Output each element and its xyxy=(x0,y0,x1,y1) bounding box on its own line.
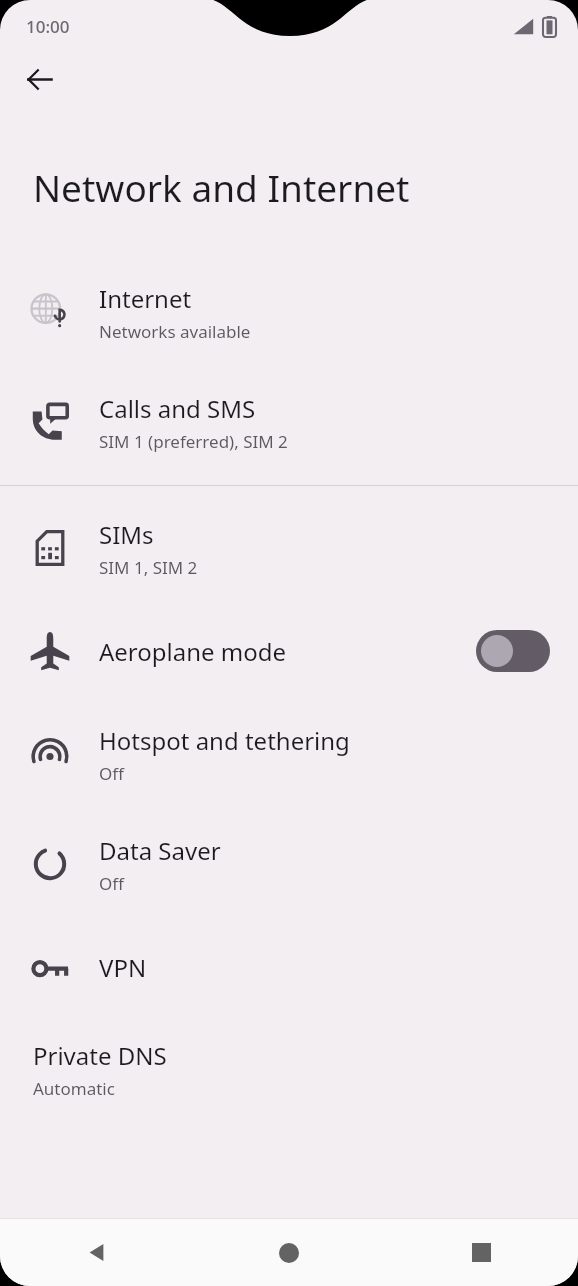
staticText: Network and Internet xyxy=(33,162,410,212)
staticText: 10:00 xyxy=(26,15,70,38)
staticText: VPN xyxy=(99,951,147,984)
button[interactable]: Back xyxy=(12,52,66,106)
staticText: SIM 1, SIM 2 xyxy=(99,556,198,579)
staticText: Calls and SMS xyxy=(99,392,256,425)
button[interactable]: Back xyxy=(0,1219,192,1286)
staticText: Aeroplane mode xyxy=(99,635,287,668)
staticText: Data Saver xyxy=(99,834,221,867)
staticText: Off xyxy=(99,872,124,895)
staticText: Off xyxy=(99,762,124,785)
staticText: Hotspot and tethering xyxy=(99,724,350,757)
staticText: Networks available xyxy=(99,320,251,343)
button[interactable]: Aeroplane mode xyxy=(476,630,550,672)
staticText: SIMs xyxy=(99,518,154,551)
staticText: SIM 1 (preferred), SIM 2 xyxy=(99,430,288,453)
staticText: Internet xyxy=(99,282,192,315)
button[interactable]: Private DNS xyxy=(0,1035,578,1104)
button[interactable]: Calls and SMS xyxy=(0,367,578,477)
button[interactable]: Recent apps xyxy=(385,1219,578,1286)
button[interactable]: Home xyxy=(192,1219,385,1286)
staticText: Private DNS xyxy=(33,1039,167,1072)
button[interactable]: Data Saver xyxy=(0,809,578,919)
button[interactable]: Internet xyxy=(0,257,578,367)
button[interactable]: SIMs xyxy=(0,493,578,603)
button[interactable]: VPN xyxy=(0,919,578,1015)
staticText: Automatic xyxy=(33,1077,115,1100)
button[interactable]: Hotspot and tethering xyxy=(0,699,578,809)
button[interactable]: Aeroplane mode xyxy=(0,603,578,699)
